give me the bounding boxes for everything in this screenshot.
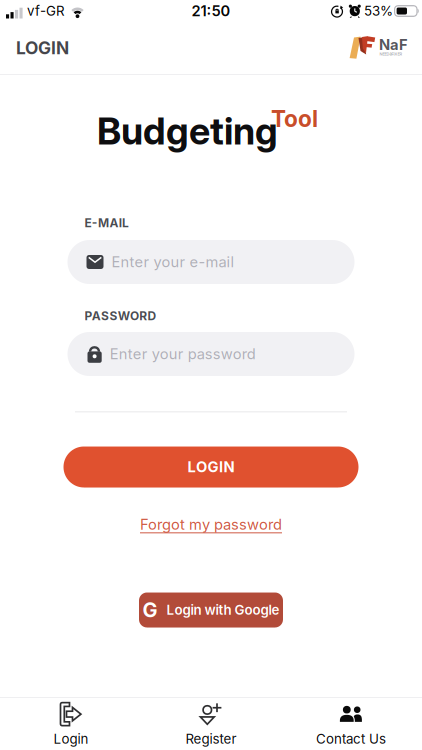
button[interactable]: Enter your e-mail xyxy=(67,240,354,284)
staticText: Enter your password xyxy=(110,345,256,363)
button[interactable]: Forgot my password xyxy=(140,512,282,536)
staticText: Tool xyxy=(271,105,318,132)
staticText: NaF xyxy=(379,36,408,53)
staticText: Forgot my password xyxy=(140,516,282,533)
staticText: vf-GR xyxy=(27,3,65,19)
button[interactable]: Register xyxy=(141,699,281,749)
button[interactable]: Login xyxy=(1,699,141,749)
staticText: G xyxy=(142,598,157,622)
staticText: Contact Us xyxy=(316,731,386,747)
staticText: Enter your e-mail xyxy=(111,253,234,271)
staticText: 53% xyxy=(364,3,393,19)
staticText: Login with Google xyxy=(166,602,279,618)
staticText: NEEDaFIXER xyxy=(379,52,402,56)
staticText: Budgeting xyxy=(97,109,278,153)
button[interactable]: Enter your password xyxy=(67,332,354,376)
staticText: LOGIN xyxy=(187,458,234,476)
staticText: E-MAIL xyxy=(84,216,129,230)
staticText: Register xyxy=(185,731,236,747)
staticText: 21:50 xyxy=(191,2,230,20)
button[interactable]: LOGIN xyxy=(63,446,358,487)
button[interactable]: G xyxy=(139,592,283,627)
staticText: Login xyxy=(53,731,88,747)
staticText: PASSWORD xyxy=(84,309,157,323)
button[interactable]: Contact Us xyxy=(281,699,421,749)
staticText: LOGIN xyxy=(16,38,69,58)
